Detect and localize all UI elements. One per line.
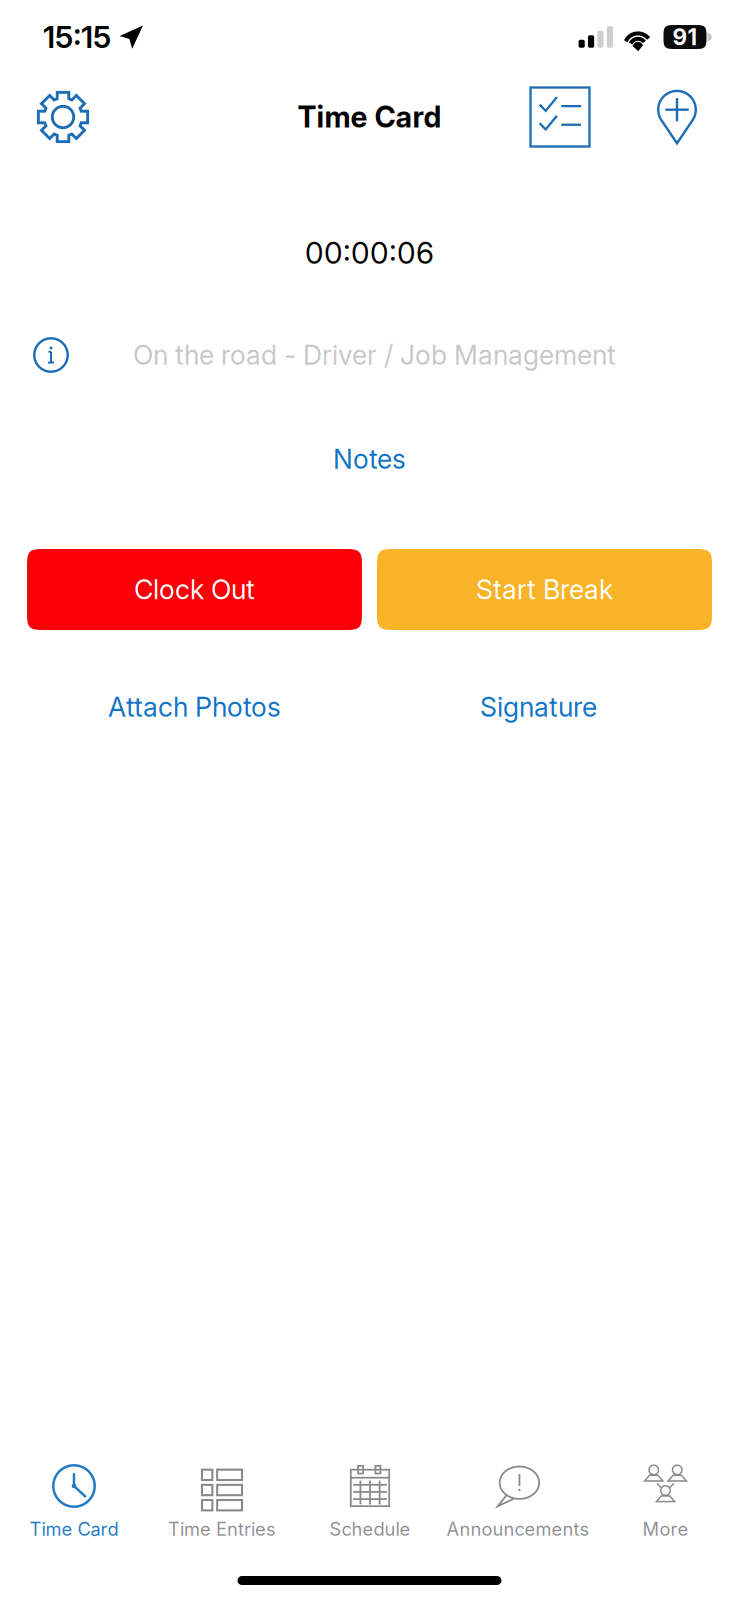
- button[interactable]: Settings: [25, 76, 101, 158]
- staticText: More: [642, 1518, 688, 1540]
- button[interactable]: Clock Out: [27, 549, 362, 630]
- button[interactable]: Announcements: [444, 1455, 592, 1545]
- button[interactable]: Signature: [377, 691, 712, 723]
- staticText: Announcements: [446, 1518, 589, 1540]
- button[interactable]: Schedule: [296, 1455, 444, 1545]
- button[interactable]: Time Card: [0, 1455, 148, 1545]
- button[interactable]: Start Break: [377, 549, 712, 630]
- button[interactable]: Add location: [641, 76, 713, 158]
- staticText: Signature: [480, 691, 597, 723]
- staticText: Clock Out: [134, 573, 255, 606]
- staticText: Time Entries: [168, 1518, 276, 1540]
- button[interactable]: Checklist: [524, 76, 596, 158]
- staticText: Schedule: [329, 1518, 410, 1540]
- staticText: Time Card: [29, 1518, 118, 1540]
- staticText: On the road - Driver / Job Management: [133, 339, 616, 371]
- staticText: Time Card: [297, 99, 441, 135]
- staticText: Notes: [333, 443, 406, 475]
- staticText: Attach Photos: [108, 691, 281, 723]
- button[interactable]: More: [592, 1455, 739, 1545]
- staticText: 91: [672, 23, 697, 51]
- staticText: 00:00:06: [305, 235, 434, 271]
- button[interactable]: Time Entries: [148, 1455, 296, 1545]
- button[interactable]: Attach Photos: [27, 691, 362, 723]
- button[interactable]: Notes: [294, 443, 444, 475]
- staticText: 15:15: [43, 19, 111, 55]
- staticText: Start Break: [476, 573, 613, 606]
